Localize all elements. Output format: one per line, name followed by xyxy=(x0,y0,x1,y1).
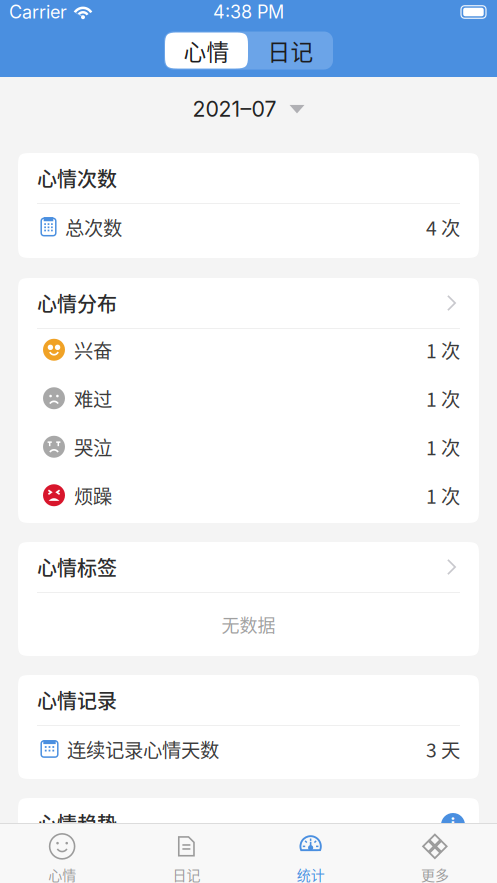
button[interactable]: 心情 xyxy=(164,32,248,68)
staticText: 心情次数 xyxy=(37,163,117,192)
button[interactable]: 更多 xyxy=(373,824,497,883)
staticText: 4:38 PM xyxy=(213,1,284,23)
staticText: 统计 xyxy=(297,864,325,883)
staticText: 更多 xyxy=(421,864,449,883)
button[interactable]: 日记 xyxy=(164,32,332,68)
staticText: 难过 xyxy=(74,384,112,412)
staticText: i xyxy=(450,814,455,835)
staticText: 日记 xyxy=(267,34,313,67)
staticText: 兴奋 xyxy=(74,336,112,364)
staticText: 心情分布 xyxy=(37,288,117,317)
staticText: 1 次 xyxy=(426,433,460,461)
button[interactable]: 2021–07 xyxy=(0,77,497,153)
staticText: 烦躁 xyxy=(74,481,112,509)
staticText: 1 次 xyxy=(426,481,460,509)
staticText: 2021–07 xyxy=(192,96,276,122)
staticText: 心情标签 xyxy=(37,552,117,581)
staticText: 日记 xyxy=(172,864,200,883)
staticText: 哭泣 xyxy=(74,433,112,461)
button[interactable]: 心情标签 xyxy=(18,542,479,592)
button[interactable]: 哭泣 xyxy=(18,426,479,474)
staticText: 心情趋势 xyxy=(37,808,117,837)
button[interactable]: 心情 xyxy=(0,824,124,883)
staticText: 心情记录 xyxy=(37,685,117,714)
button[interactable]: 连续记录心情天数 xyxy=(18,726,479,779)
staticText: 1 次 xyxy=(426,336,460,364)
button[interactable]: 心情分布 xyxy=(18,278,479,328)
staticText: 1 次 xyxy=(426,384,460,412)
staticText: Carrier xyxy=(9,1,67,23)
staticText: 4 次 xyxy=(426,213,460,241)
staticText: 连续记录心情天数 xyxy=(67,735,219,763)
button[interactable]: 统计 xyxy=(248,824,373,883)
staticText: 心情 xyxy=(48,864,76,883)
button[interactable]: 日记 xyxy=(124,824,248,883)
staticText: 总次数 xyxy=(65,213,122,241)
button[interactable]: 总次数 xyxy=(18,204,479,258)
button[interactable]: 兴奋 xyxy=(18,329,479,377)
staticText: 心情 xyxy=(183,34,229,67)
staticText: 无数据 xyxy=(221,611,275,638)
button[interactable]: 难过 xyxy=(18,377,479,426)
staticText: 3 天 xyxy=(426,735,460,763)
button[interactable]: 烦躁 xyxy=(18,474,479,523)
button[interactable]: 说明 xyxy=(441,813,465,837)
